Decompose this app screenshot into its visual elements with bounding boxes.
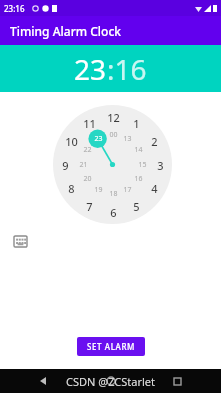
staticText: 5 — [133, 199, 140, 214]
staticText: 10 — [65, 134, 78, 149]
staticText: Timing Alarm Clock — [10, 23, 121, 39]
staticText: 8 — [68, 181, 75, 196]
button[interactable]: SET ALARM — [77, 337, 145, 356]
button[interactable]: Switch to text input — [12, 233, 28, 249]
staticText: 1 — [133, 116, 140, 131]
button[interactable]: Back — [34, 371, 54, 391]
staticText: CSDN @ZCStarlet — [66, 374, 156, 389]
staticText: 20 — [83, 174, 92, 184]
staticText: 18 — [109, 189, 118, 199]
staticText: 4 — [151, 181, 158, 196]
staticText: 21 — [79, 160, 88, 170]
staticText: 17 — [123, 185, 132, 195]
button[interactable]: 12 — [53, 105, 172, 224]
button[interactable]: 23 — [0, 45, 221, 92]
button[interactable]: Recent apps — [167, 371, 187, 391]
staticText: 7 — [86, 199, 93, 214]
staticText: 23 — [74, 50, 107, 88]
staticText: 12 — [107, 110, 120, 125]
staticText: :16 — [107, 50, 147, 88]
staticText: 00 — [109, 130, 118, 140]
staticText: 23:16 — [4, 3, 25, 14]
staticText: 9 — [62, 158, 69, 173]
staticText: 19 — [94, 185, 103, 195]
staticText: 16 — [134, 174, 143, 184]
staticText: 11 — [83, 116, 96, 131]
staticText: 23 — [94, 134, 103, 144]
staticText: 3 — [157, 158, 164, 173]
button[interactable]: Home — [101, 371, 121, 391]
staticText: 14 — [134, 145, 143, 155]
staticText: 6 — [110, 205, 117, 220]
staticText: SET ALARM — [87, 341, 135, 352]
staticText: 15 — [138, 160, 147, 170]
staticText: 22 — [83, 145, 92, 155]
staticText: 2 — [151, 134, 158, 149]
staticText: 13 — [123, 134, 132, 144]
